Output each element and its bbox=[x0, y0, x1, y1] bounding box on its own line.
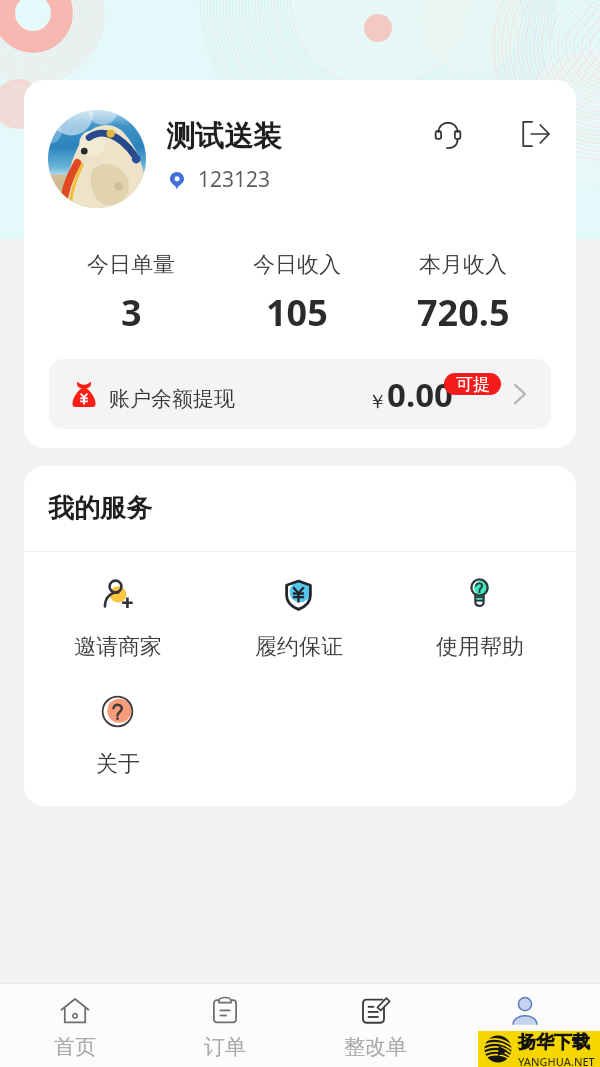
button[interactable]: 账户余额提现 bbox=[49, 359, 551, 429]
staticText: 整改单 bbox=[344, 1034, 407, 1060]
staticText: 105 bbox=[266, 288, 328, 337]
button[interactable]: 使用帮助 bbox=[389, 578, 570, 661]
staticText: 本月收入 bbox=[419, 251, 507, 279]
staticText: 关于 bbox=[96, 750, 140, 778]
staticText: 720.5 bbox=[417, 288, 510, 337]
button[interactable]: Logout bbox=[515, 114, 555, 154]
staticText: 我的服务 bbox=[48, 492, 152, 525]
staticText: 3 bbox=[121, 288, 142, 337]
staticText: ￥ bbox=[368, 390, 387, 414]
staticText: YANGHUA.NET bbox=[518, 1054, 595, 1067]
staticText: 今日收入 bbox=[253, 251, 341, 279]
staticText: 我的 bbox=[504, 1034, 546, 1060]
button[interactable]: 关于 bbox=[27, 695, 208, 778]
staticText: 扬华下载 bbox=[518, 1031, 590, 1054]
staticText: 账户余额提现 bbox=[109, 386, 235, 412]
staticText: 邀请商家 bbox=[74, 633, 162, 661]
staticText: 0.00 bbox=[387, 372, 453, 417]
staticText: 可提 bbox=[456, 374, 490, 395]
button[interactable]: 整改单 bbox=[300, 984, 450, 1060]
staticText: 订单 bbox=[204, 1034, 246, 1060]
staticText: 123123 bbox=[198, 165, 271, 194]
button[interactable]: Customer service bbox=[428, 114, 468, 154]
staticText: 使用帮助 bbox=[436, 633, 524, 661]
button[interactable]: 履约保证 bbox=[208, 578, 389, 661]
button[interactable]: 邀请商家 bbox=[27, 578, 208, 661]
staticText: 首页 bbox=[54, 1034, 96, 1060]
staticText: 测试送装 bbox=[166, 118, 282, 155]
staticText: 今日单量 bbox=[87, 251, 175, 279]
staticText: 履约保证 bbox=[255, 633, 343, 661]
button[interactable]: 订单 bbox=[150, 984, 300, 1060]
button[interactable]: 我的 bbox=[450, 984, 600, 1060]
button[interactable]: 首页 bbox=[0, 984, 150, 1060]
